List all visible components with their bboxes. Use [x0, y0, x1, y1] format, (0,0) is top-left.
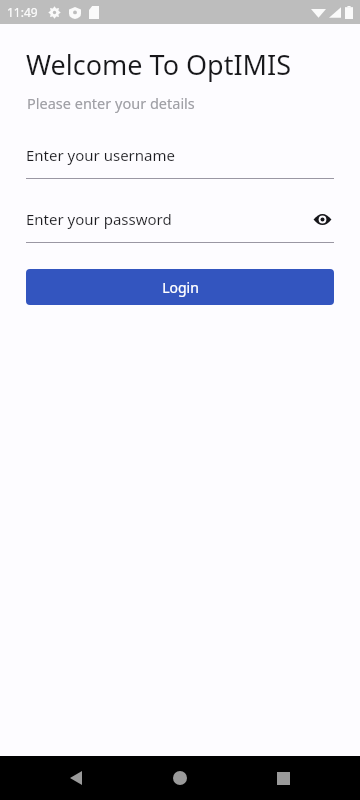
button[interactable]: Recent apps: [269, 764, 297, 792]
staticText: Enter your password: [26, 209, 310, 229]
staticText: Enter your username: [26, 145, 334, 165]
button[interactable]: Enter your username: [26, 142, 334, 168]
staticText: 11:49: [7, 4, 38, 20]
button[interactable]: Enter your password: [26, 206, 334, 232]
staticText: Login: [162, 278, 199, 297]
button[interactable]: Back: [62, 764, 90, 792]
staticText: Please enter your details: [27, 93, 195, 113]
button[interactable]: Show password: [310, 207, 334, 231]
button[interactable]: Home: [166, 764, 194, 792]
staticText: Welcome To OptIMIS: [26, 46, 292, 83]
button[interactable]: Login: [26, 269, 334, 305]
